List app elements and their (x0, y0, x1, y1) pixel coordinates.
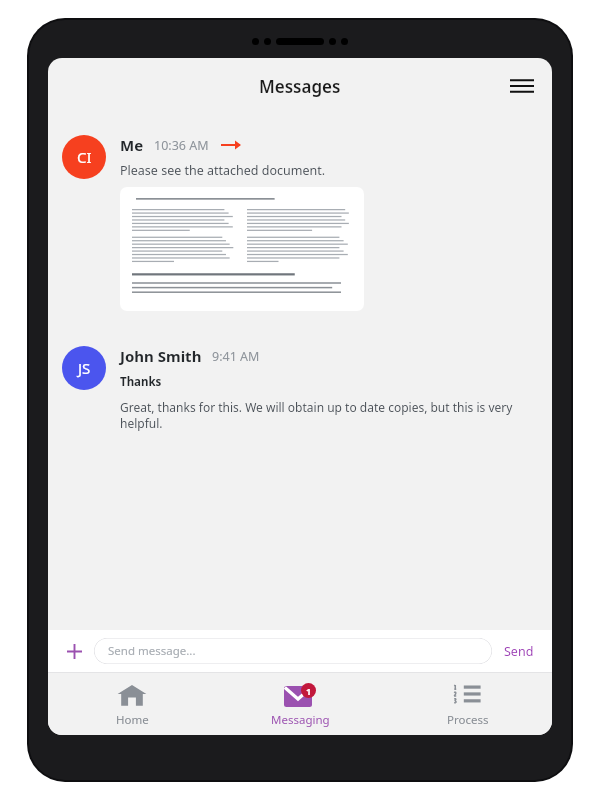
staticText: Great, thanks for this. We will obtain u… (120, 399, 538, 431)
staticText: Please see the attached document. (120, 162, 326, 179)
button[interactable]: 1 (216, 673, 384, 735)
staticText: Messages (259, 75, 341, 98)
staticText: Send (504, 643, 534, 660)
button[interactable]: Process (384, 673, 552, 735)
staticText: 1 (306, 685, 312, 697)
staticText: Home (116, 712, 149, 728)
button[interactable]: Send (500, 637, 538, 666)
staticText: Me (120, 135, 144, 155)
button[interactable]: Attached document preview (120, 187, 364, 311)
staticText: 10:36 AM (154, 137, 209, 154)
button[interactable]: Home (48, 673, 216, 735)
staticText: 9:41 AM (212, 348, 260, 365)
staticText: JS (78, 358, 91, 378)
button[interactable]: Send message... (94, 638, 492, 664)
staticText: CI (77, 147, 92, 167)
staticText: Send message... (108, 643, 196, 659)
button[interactable]: Add attachment (60, 637, 88, 665)
staticText: Process (447, 712, 489, 728)
staticText: John Smith (120, 346, 202, 366)
button[interactable]: Menu (502, 66, 542, 106)
staticText: Messaging (271, 712, 330, 728)
staticText: Thanks (120, 374, 162, 390)
